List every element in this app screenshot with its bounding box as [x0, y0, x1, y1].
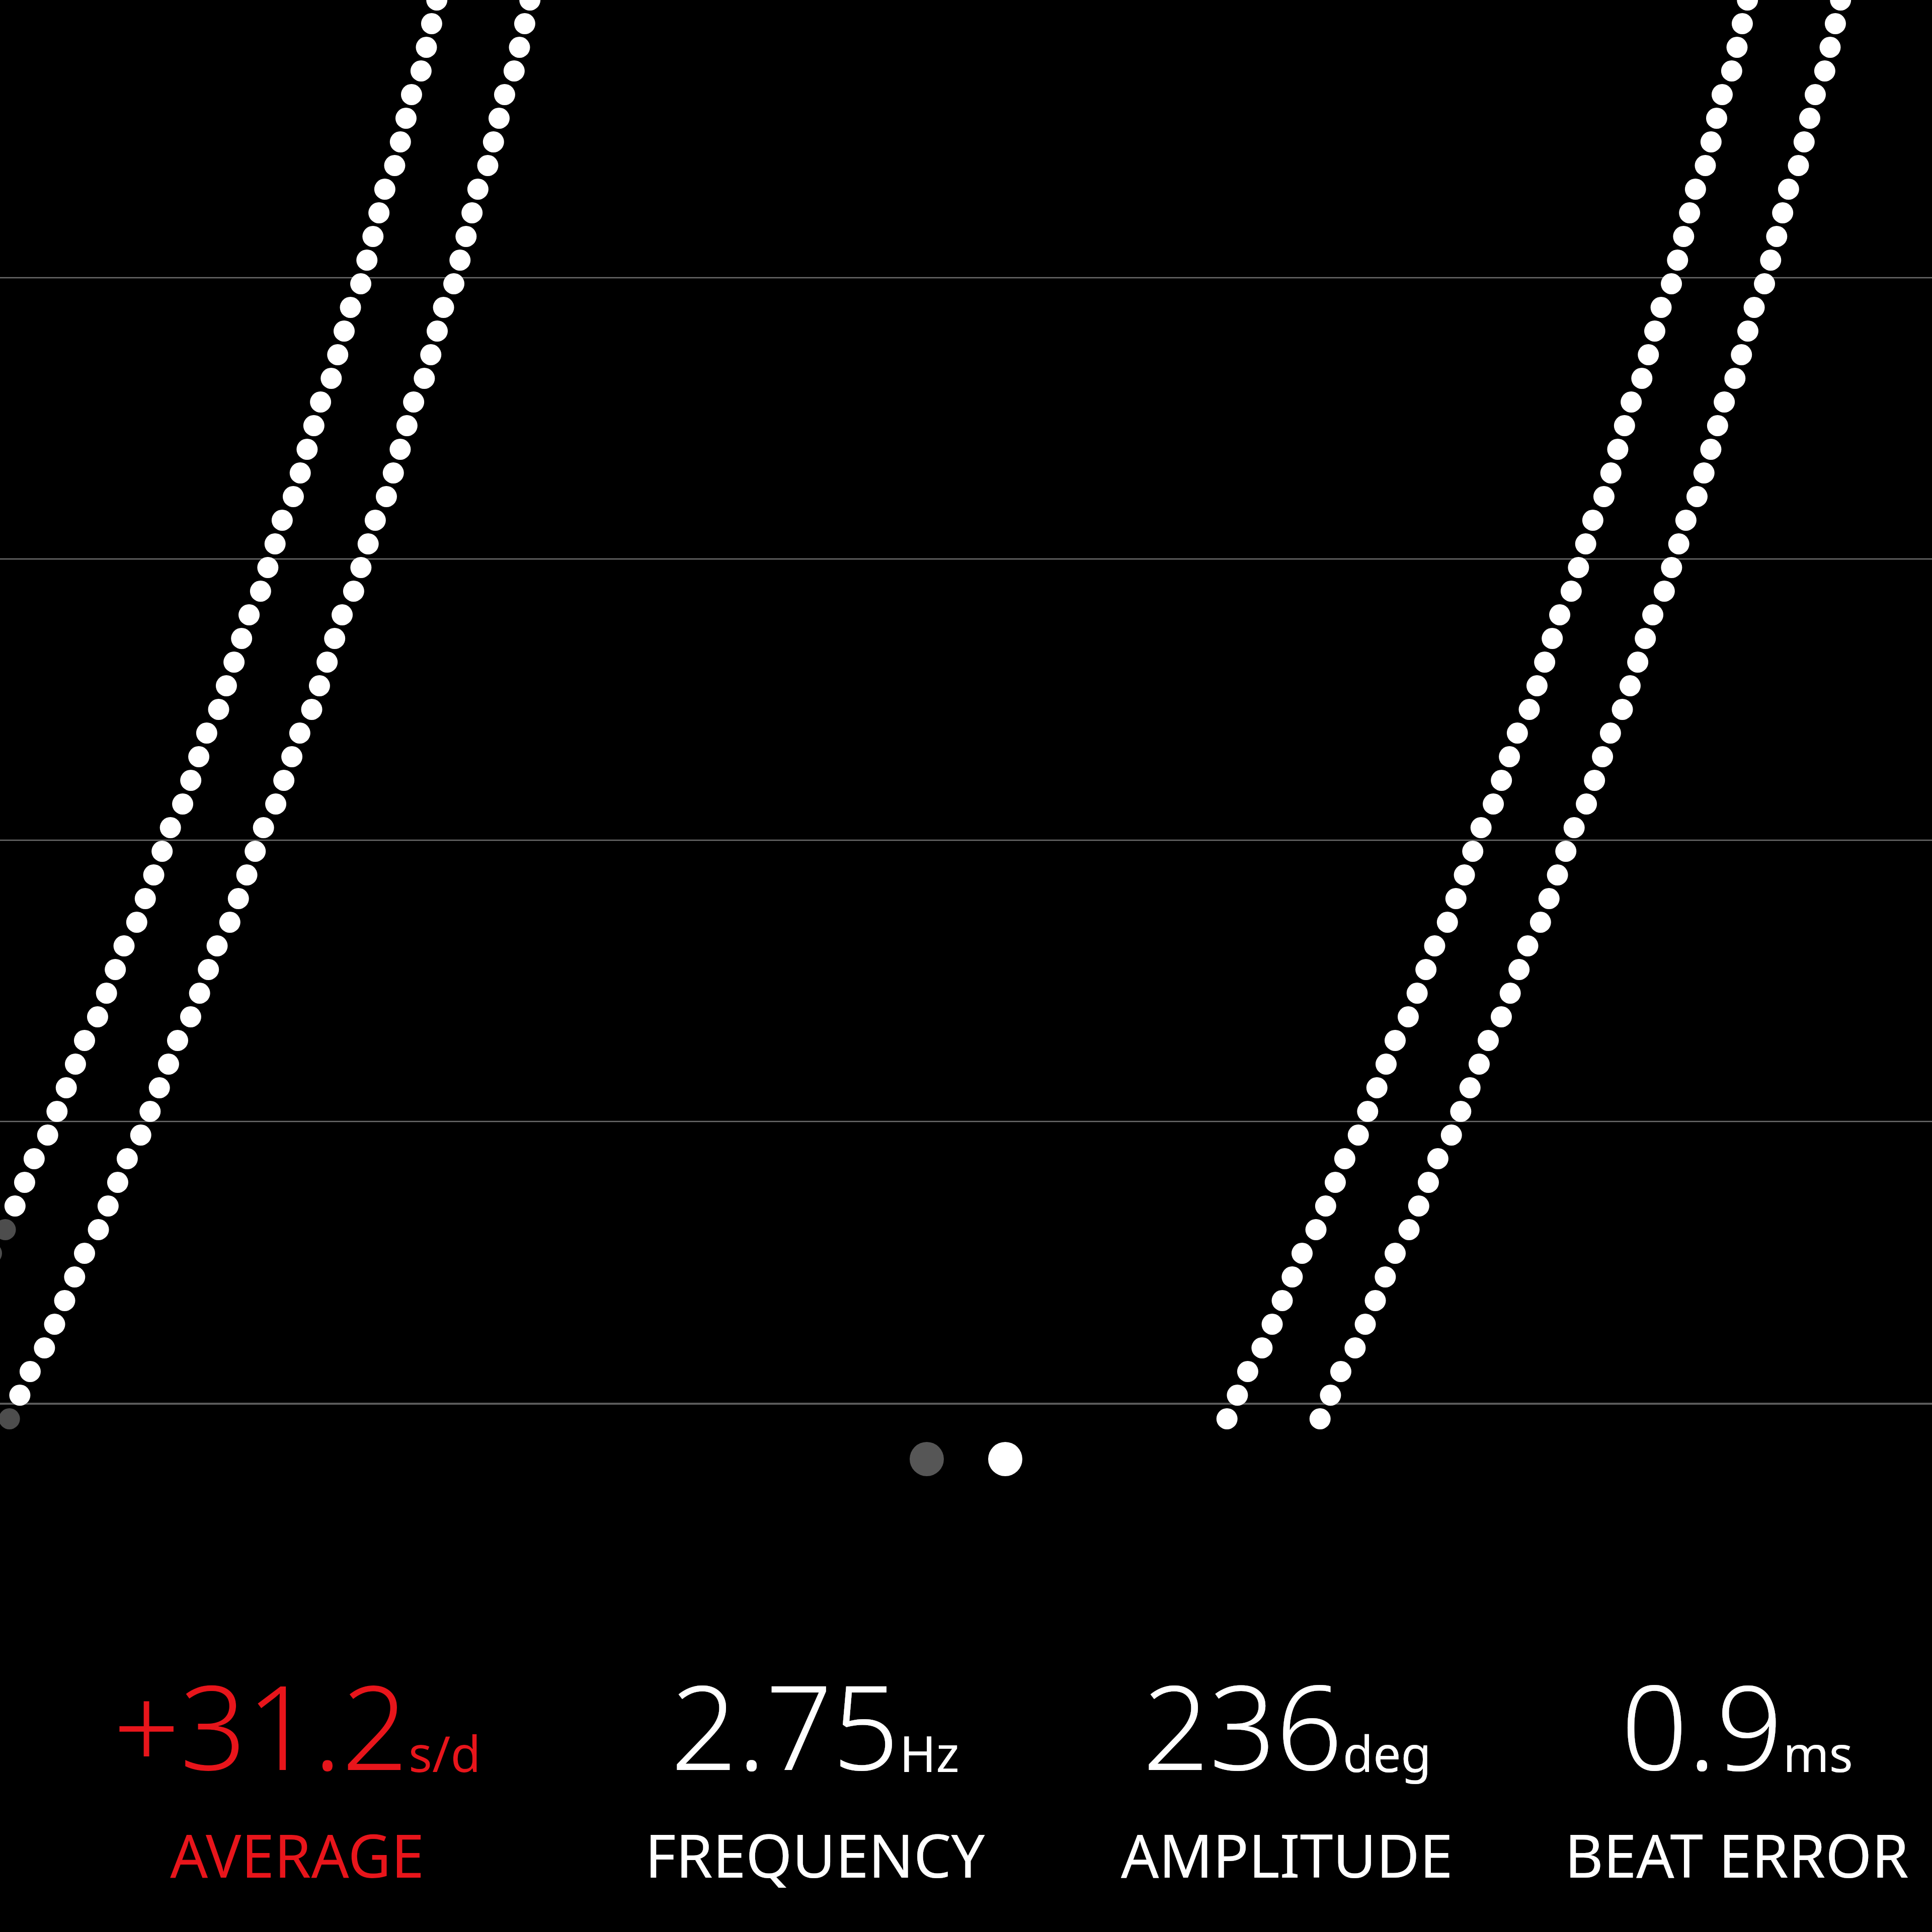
button[interactable]: 236 — [985, 1645, 1589, 1907]
staticText: s/d — [409, 1719, 481, 1786]
staticText: AVERAGE — [170, 1814, 425, 1895]
button[interactable]: +31.2 — [0, 1645, 599, 1907]
staticText: 0.9 — [1621, 1645, 1783, 1804]
staticText: ms — [1783, 1719, 1853, 1786]
button[interactable]: 2.75 — [513, 1645, 1117, 1907]
staticText: AMPLITUDE — [1121, 1814, 1453, 1895]
staticText: 2.75 — [671, 1645, 900, 1804]
button[interactable]: Page 2 — [988, 1442, 1022, 1476]
staticText: Hz — [900, 1719, 959, 1786]
staticText: +31.2 — [113, 1645, 409, 1804]
staticText: FREQUENCY — [645, 1814, 985, 1895]
button[interactable]: 0.9 — [1435, 1645, 1932, 1907]
staticText: deg — [1343, 1719, 1431, 1786]
button[interactable]: Page 1 — [910, 1442, 944, 1476]
staticText: BEAT ERROR — [1565, 1814, 1909, 1895]
staticText: 236 — [1143, 1645, 1343, 1804]
